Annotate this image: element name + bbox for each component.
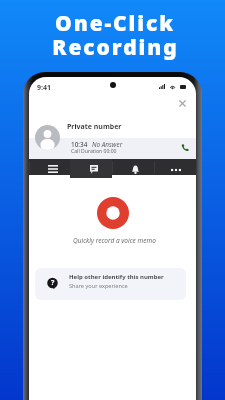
staticText: Share your experience xyxy=(69,282,128,290)
staticText: No Answer xyxy=(92,140,123,149)
button[interactable]: Notifications xyxy=(112,159,154,178)
staticText: 9:41 xyxy=(37,83,51,93)
staticText: ? xyxy=(51,278,55,288)
staticText: Help other identify this number xyxy=(69,273,164,281)
button[interactable]: More xyxy=(154,159,196,178)
staticText: Private number xyxy=(67,122,122,132)
button[interactable]: Close xyxy=(177,98,188,109)
staticText: 10:34 xyxy=(71,140,88,149)
staticText: Recording xyxy=(52,33,179,62)
staticText: Call Duration 00:00 xyxy=(71,148,117,155)
button[interactable]: ? xyxy=(35,268,186,300)
staticText: One-Click xyxy=(55,9,175,38)
button[interactable]: Menu xyxy=(29,159,70,178)
button[interactable]: Record voice memo xyxy=(97,197,129,229)
staticText: Quickly record a voice memo xyxy=(73,236,156,245)
button[interactable]: Messages xyxy=(70,159,112,178)
button[interactable]: Call back xyxy=(180,143,190,153)
